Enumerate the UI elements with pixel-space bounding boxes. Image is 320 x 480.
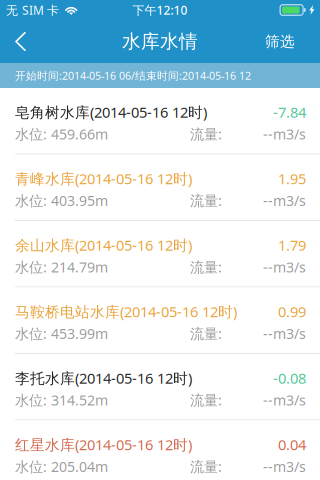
button[interactable]: 返回 — [0, 20, 41, 63]
staticText: -7.84 — [273, 102, 306, 122]
button[interactable]: 青峰水库(2014-05-16 12时) — [0, 154, 320, 221]
button[interactable]: 余山水库(2014-05-16 12时) — [0, 221, 320, 287]
staticText: 水库水情 — [122, 30, 198, 53]
staticText: 红星水库(2014-05-16 12时) — [15, 435, 192, 454]
staticText: 马鞍桥电站水库(2014-05-16 12时) — [15, 302, 237, 321]
staticText: 流量: — [190, 191, 222, 210]
staticText: 1.95 — [278, 169, 306, 188]
staticText: --m3/s — [263, 124, 306, 144]
staticText: 开始时间:2014-05-16 06/结束时间:2014-05-16 12 — [15, 68, 251, 83]
staticText: 李托水库(2014-05-16 12时) — [15, 368, 192, 388]
staticText: --m3/s — [263, 390, 306, 410]
staticText: -0.08 — [273, 368, 306, 388]
staticText: 无 SIM 卡 — [6, 2, 59, 18]
button[interactable]: 马鞍桥电站水库(2014-05-16 12时) — [0, 287, 320, 354]
staticText: 水位: 403.95m — [15, 191, 108, 210]
staticText: 流量: — [190, 390, 222, 410]
staticText: --m3/s — [263, 457, 306, 476]
staticText: 皂角树水库(2014-05-16 12时) — [15, 102, 207, 122]
staticText: 水位: 314.52m — [15, 390, 108, 410]
staticText: 下午12:10 — [132, 2, 187, 18]
staticText: 0.99 — [278, 302, 306, 321]
staticText: 流量: — [190, 457, 222, 476]
staticText: 筛选 — [265, 32, 295, 50]
staticText: 流量: — [190, 124, 222, 144]
staticText: 水位: 453.99m — [15, 324, 108, 343]
staticText: 青峰水库(2014-05-16 12时) — [15, 169, 192, 188]
staticText: 水位: 214.79m — [15, 257, 108, 277]
button[interactable]: 李托水库(2014-05-16 12时) — [0, 354, 320, 420]
button[interactable]: 红星水库(2014-05-16 12时) — [0, 420, 320, 480]
staticText: 水位: 459.66m — [15, 124, 108, 144]
button[interactable]: 皂角树水库(2014-05-16 12时) — [0, 88, 320, 154]
staticText: --m3/s — [263, 324, 306, 343]
staticText: 水位: 205.04m — [15, 457, 108, 476]
staticText: --m3/s — [263, 191, 306, 210]
staticText: 流量: — [190, 324, 222, 343]
staticText: --m3/s — [263, 257, 306, 277]
staticText: 流量: — [190, 257, 222, 277]
staticText: 0.04 — [278, 435, 306, 454]
button[interactable]: 筛选 — [252, 20, 308, 63]
staticText: 1.79 — [278, 235, 306, 255]
staticText: 余山水库(2014-05-16 12时) — [15, 235, 192, 255]
